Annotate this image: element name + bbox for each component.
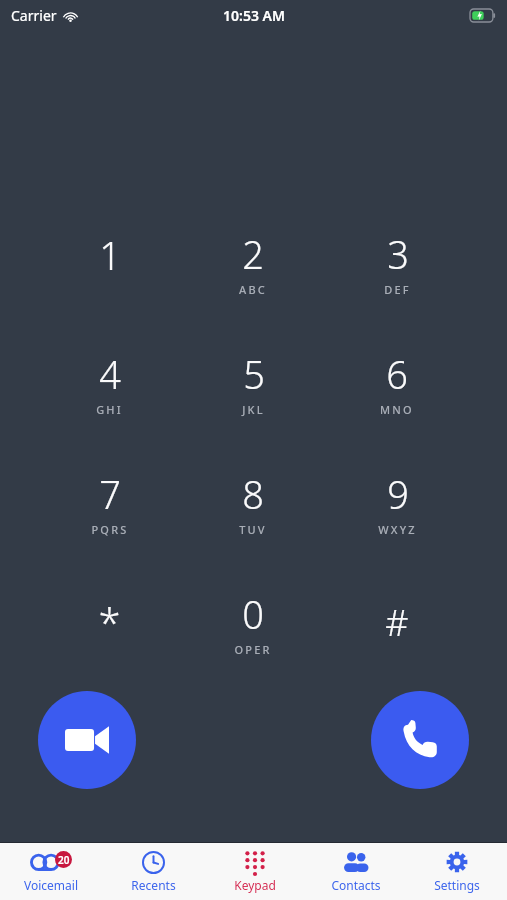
button[interactable]: Recents [102,843,204,900]
button[interactable]: 3 [325,202,469,322]
staticText: 3 [387,228,409,280]
staticText: 10:53 AM [223,6,285,25]
button[interactable]: 2 [181,202,325,322]
staticText: MNO [380,402,414,417]
staticText: 4 [99,348,121,400]
staticText: 7 [99,468,121,520]
button[interactable]: * [38,562,181,682]
staticText: Recents [131,877,176,893]
button[interactable]: 8 [181,442,325,562]
staticText: 6 [386,348,408,400]
staticText: * [98,595,121,649]
button[interactable]: # [325,562,469,682]
staticText: DEF [384,282,411,297]
button[interactable]: Video call [38,691,136,789]
staticText: 20 [58,853,70,867]
staticText: TUV [239,522,267,537]
staticText: Carrier [11,6,57,25]
button[interactable]: 7 [38,442,181,562]
staticText: 2 [242,228,264,280]
staticText: Contacts [331,877,381,893]
staticText: 9 [387,468,409,520]
button[interactable]: Keypad [204,843,305,900]
staticText: 8 [242,468,264,520]
button[interactable]: Settings [406,843,507,900]
button[interactable]: 5 [181,322,325,442]
button[interactable]: 4 [38,322,181,442]
button[interactable]: Call [371,691,469,789]
staticText: WXYZ [378,522,417,537]
button[interactable]: 0 [181,562,325,682]
staticText: 5 [243,348,265,400]
staticText: Voicemail [24,877,78,893]
staticText: Settings [434,877,480,893]
button[interactable]: 20 [0,843,102,900]
button[interactable]: Contacts [305,843,406,900]
staticText: JKL [242,402,265,417]
staticText: 1 [99,229,121,281]
button[interactable]: 1 [38,202,181,322]
staticText: PQRS [91,522,129,537]
button[interactable]: 6 [325,322,469,442]
staticText: ABC [239,282,267,297]
button[interactable]: 9 [325,442,469,562]
staticText: OPER [234,642,272,657]
staticText: Keypad [234,877,276,893]
staticText: # [385,598,409,647]
staticText: 0 [242,588,264,640]
staticText: GHI [96,402,123,417]
